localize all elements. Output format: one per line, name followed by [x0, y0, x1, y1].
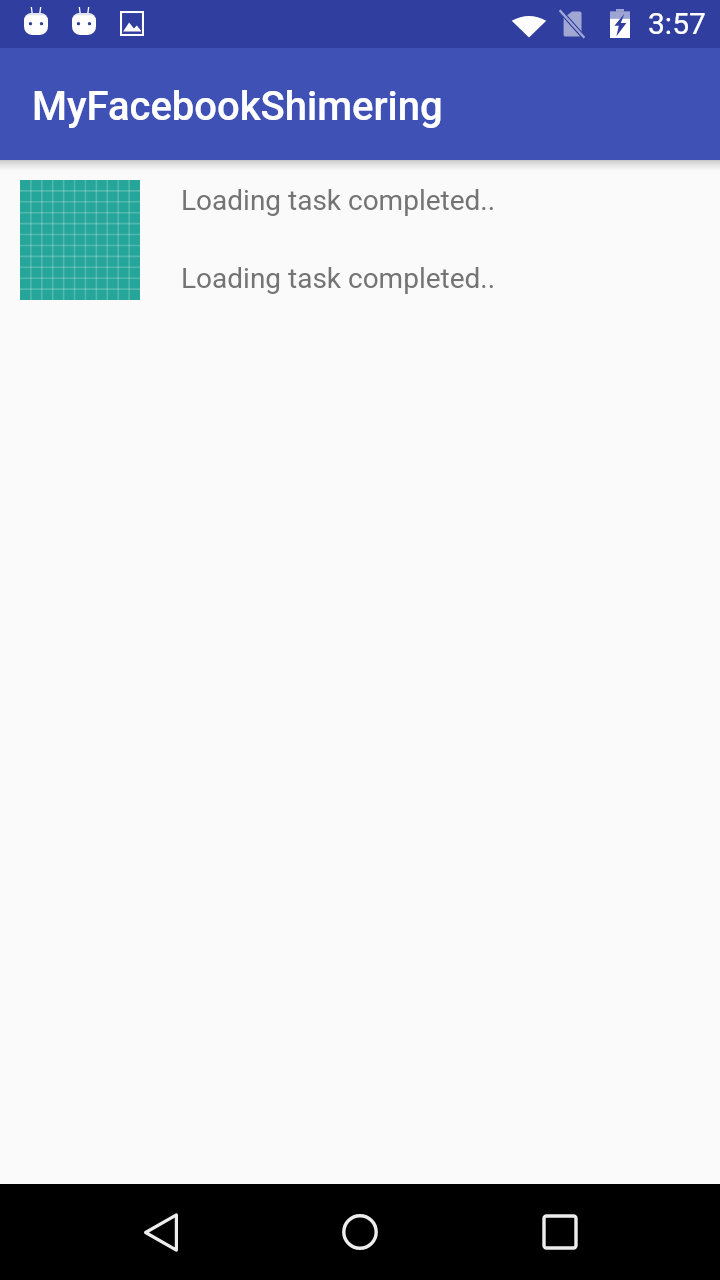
button[interactable]: Home — [320, 1192, 400, 1272]
staticText: 3:57 — [648, 6, 706, 41]
staticText: MyFacebookShimering — [32, 83, 443, 130]
button[interactable]: Loading task completed.. — [181, 184, 496, 217]
button[interactable]: Recents — [520, 1192, 600, 1272]
button[interactable]: Back — [121, 1192, 201, 1272]
button[interactable]: Loading task completed.. — [181, 262, 496, 295]
